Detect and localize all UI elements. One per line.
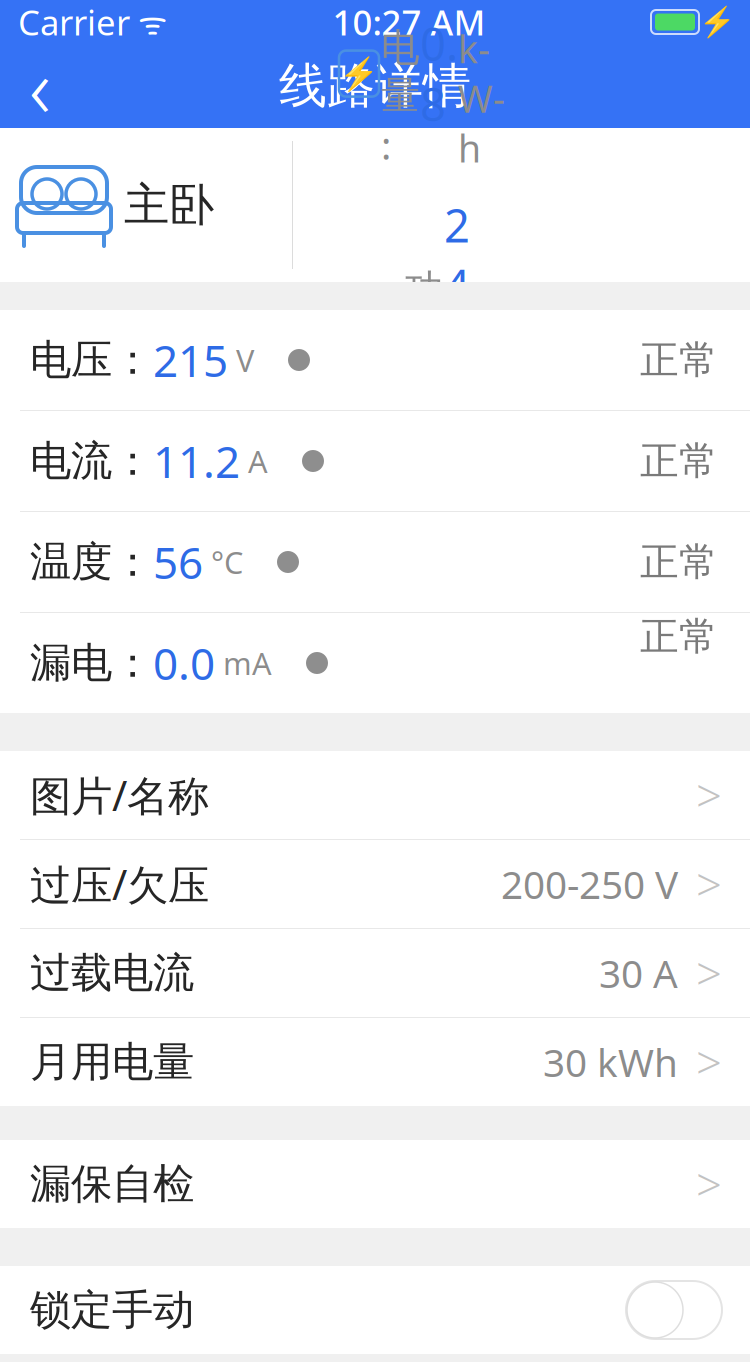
staticText: > [696, 854, 722, 914]
staticText: > [696, 765, 722, 825]
staticText: 30 kWh [543, 1036, 678, 1088]
staticText: 功率: [381, 266, 444, 364]
staticText: 2400 [444, 195, 470, 436]
staticText: 主卧 [124, 177, 214, 233]
staticText: Carrier [18, 0, 130, 45]
staticText: 电流： [30, 436, 153, 486]
staticText: 200-250 V [501, 858, 678, 910]
staticText: 漏电： [30, 638, 153, 688]
staticText: 正常 [640, 538, 718, 586]
button[interactable]: 锁定手动 [0, 1266, 750, 1354]
staticText: 0.0 [153, 634, 215, 692]
staticText: 11.2 [153, 432, 240, 490]
staticText: kWh [458, 0, 505, 173]
staticText: ‹ [29, 31, 51, 141]
staticText: 过载电流 [30, 948, 194, 998]
button[interactable]: Back [0, 46, 80, 126]
staticText: 月用电量 [30, 1037, 194, 1087]
staticText: 锁定手动 [30, 1285, 194, 1335]
button[interactable]: 过压/欠压 [0, 840, 750, 928]
staticText: > [696, 1032, 722, 1092]
staticText: A [240, 441, 268, 481]
staticText: 温度： [30, 537, 153, 587]
staticText: 正常 [640, 336, 718, 384]
staticText: 0.8 [420, 13, 458, 134]
staticText: 215 [153, 331, 228, 389]
staticText: ⚡ [699, 5, 736, 39]
button[interactable]: 过载电流 [0, 929, 750, 1017]
staticText: 30 A [599, 947, 678, 999]
staticText: 线路详情 [279, 56, 471, 115]
staticText: 10:27 AM [332, 0, 485, 45]
button[interactable]: 月用电量 [0, 1018, 750, 1106]
staticText: 电压： [30, 335, 153, 385]
staticText: 电量: [381, 0, 420, 170]
staticText: 正常 [640, 437, 718, 485]
staticText: ᯤ [130, 1, 167, 43]
staticText: V [228, 340, 254, 380]
staticText: 56 [153, 533, 203, 591]
staticText: W [470, 266, 505, 365]
staticText: mA [215, 643, 272, 683]
staticText: 图片/名称 [30, 768, 209, 822]
staticText: > [696, 1154, 722, 1214]
staticText: ⚡ [339, 55, 379, 92]
staticText: 正常 [640, 613, 718, 660]
staticText: °C [203, 542, 243, 582]
staticText: > [696, 943, 722, 1003]
button[interactable]: 图片/名称 [0, 751, 750, 839]
staticText: 过压/欠压 [30, 857, 209, 911]
staticText: 漏保自检 [30, 1159, 194, 1209]
button[interactable]: 漏保自检 [0, 1140, 750, 1228]
